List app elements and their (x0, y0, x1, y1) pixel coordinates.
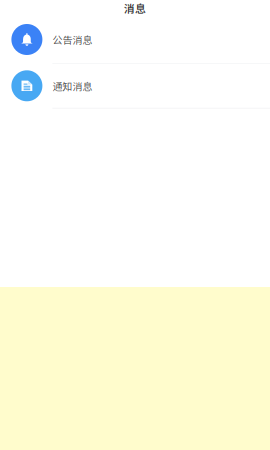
button[interactable]: 公告消息 (0, 16, 270, 63)
button[interactable]: 通知消息 (0, 64, 270, 108)
staticText: 通知消息 (52, 79, 92, 93)
staticText: 消息 (124, 0, 146, 16)
staticText: 公告消息 (52, 32, 92, 47)
